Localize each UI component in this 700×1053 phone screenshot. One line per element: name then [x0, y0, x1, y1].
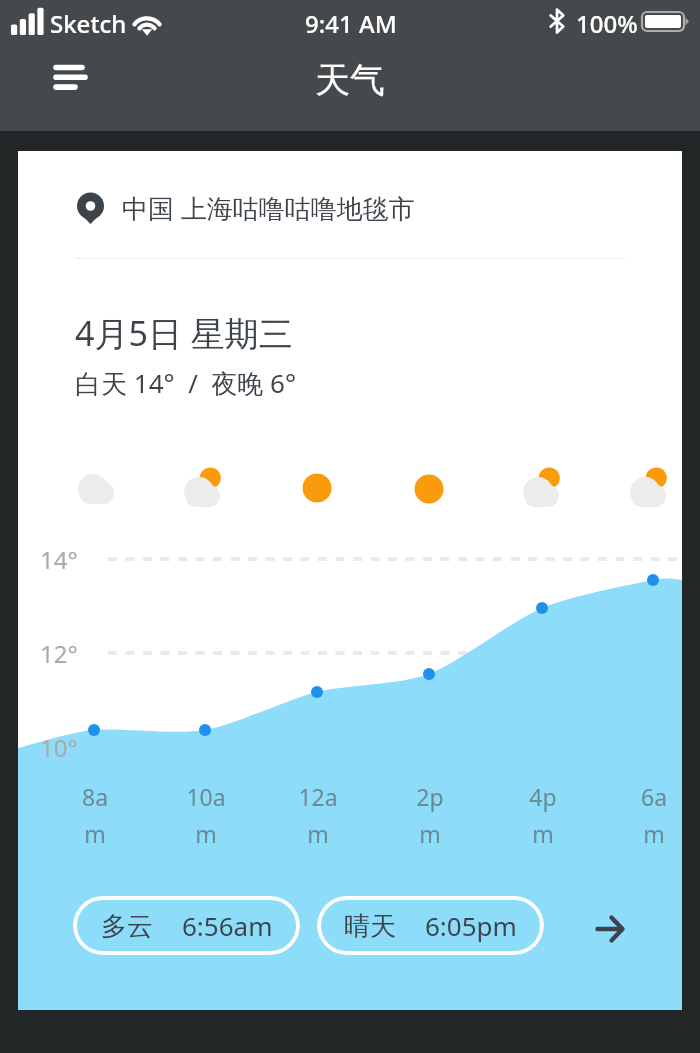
staticText: 4月5日 星期三: [75, 310, 293, 356]
staticText: 12a: [273, 781, 363, 812]
button[interactable]: Next: [583, 901, 639, 957]
staticText: 14°: [40, 543, 78, 576]
button[interactable]: 中国 上海咕噜咕噜地毯市: [18, 178, 682, 238]
staticText: 10a: [161, 781, 251, 812]
staticText: 8a: [50, 781, 140, 812]
staticText: m: [498, 818, 588, 849]
staticText: 中国 上海咕噜咕噜地毯市: [122, 190, 415, 226]
staticText: m: [161, 818, 251, 849]
staticText: m: [385, 818, 475, 849]
button[interactable]: 多云: [73, 896, 300, 955]
staticText: 白天 14° / 夜晚 6°: [75, 365, 297, 401]
staticText: 2p: [385, 781, 475, 812]
staticText: 12°: [40, 637, 78, 670]
staticText: 9:41 AM: [305, 7, 397, 40]
staticText: m: [609, 818, 699, 849]
staticText: 100%: [576, 7, 638, 40]
staticText: Sketch: [50, 7, 127, 40]
staticText: 6:56am: [182, 908, 273, 943]
staticText: 晴天: [344, 910, 396, 943]
staticText: m: [273, 818, 363, 849]
button[interactable]: 晴天: [317, 896, 544, 955]
staticText: 10°: [40, 731, 78, 764]
staticText: 多云: [101, 910, 153, 943]
button[interactable]: Menu: [32, 54, 84, 106]
staticText: 4p: [498, 781, 588, 812]
staticText: m: [50, 818, 140, 849]
staticText: 6:05pm: [425, 908, 517, 943]
staticText: 天气: [315, 58, 385, 102]
staticText: 6a: [609, 781, 699, 812]
